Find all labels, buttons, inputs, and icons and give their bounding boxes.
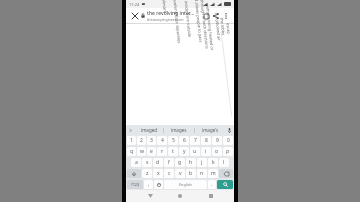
staticText: o [215,148,219,155]
staticText: escaping [225,23,231,34]
button[interactable]: , [144,180,153,189]
staticText: 2 [140,137,143,144]
staticText: q [130,148,134,155]
button[interactable]: Backspace [219,169,233,178]
button[interactable]: t [168,147,178,156]
button[interactable]: a [131,158,141,167]
button[interactable]: Tabs [201,11,211,21]
staticText: the inside from outside [183,0,192,38]
button[interactable]: the revolving inter… [147,10,199,22]
button[interactable]: s [142,158,152,167]
button[interactable]: imaged [134,125,163,135]
button[interactable]: 6 [179,136,189,145]
button[interactable]: 0 [223,136,233,145]
button[interactable]: u [190,147,200,156]
staticText: 0 [227,137,230,144]
staticText: l [223,159,225,166]
button[interactable]: o [212,147,222,156]
button[interactable]: 9 [212,136,222,145]
button[interactable]: . [208,180,216,189]
button[interactable]: z [142,169,152,178]
staticText: . [211,181,213,188]
button[interactable]: w [137,147,146,156]
button[interactable]: Shift [127,169,141,178]
staticText: f [168,159,170,166]
button[interactable]: y [179,147,189,156]
staticText: English [179,182,192,187]
staticText: v [179,170,182,177]
staticText: through in both directions [199,0,210,50]
staticText: conditioned air from inside [214,12,222,45]
staticText: 5 [172,137,175,144]
button[interactable]: f [164,158,174,167]
button[interactable]: images [164,125,194,135]
button[interactable]: ?123 [127,180,143,189]
button[interactable]: 3 [147,136,156,145]
button[interactable]: 8 [201,136,211,145]
button[interactable]: Share [211,11,221,21]
button[interactable]: Recent apps [204,190,218,202]
button[interactable]: q [127,147,136,156]
staticText: a revolving door separates [172,0,182,44]
staticText: images [171,127,187,133]
button[interactable]: Expand suggestions [126,125,134,135]
staticText: k [212,159,215,166]
button[interactable]: English [164,180,207,189]
button[interactable]: h [186,158,196,167]
button[interactable]: More options [221,11,231,21]
button[interactable]: g [175,158,185,167]
staticText: c [168,170,171,177]
button[interactable]: c [164,169,174,178]
button[interactable]: Emoji [154,180,163,189]
staticText: 6 [183,137,186,144]
button[interactable]: r [157,147,167,156]
button[interactable]: j [197,158,207,167]
button[interactable]: e [147,147,156,156]
staticText: s [146,159,149,166]
button[interactable]: image's [195,125,225,135]
button[interactable]: 7 [190,136,200,145]
staticText: a [135,159,138,166]
staticText: w [140,148,144,155]
button[interactable]: k [208,158,218,167]
button[interactable]: 1 [127,136,136,145]
staticText: Bookmark [161,0,168,14]
staticText: image's [202,127,219,133]
button[interactable]: n [197,169,207,178]
button[interactable]: Home [173,190,187,202]
staticText: imaged [141,127,157,133]
staticText: thesavvyengineer.com [147,17,184,22]
staticText: p [226,148,230,155]
button[interactable]: b [186,169,196,178]
button[interactable]: d [153,158,163,167]
button[interactable]: 5 [168,136,178,145]
staticText: j [201,159,203,166]
staticText: h [189,159,193,166]
button[interactable]: i [201,147,211,156]
button[interactable]: p [223,147,233,156]
staticText: 8 [205,137,208,144]
staticText: x [157,170,160,177]
staticText: 1 [130,137,133,144]
button[interactable]: Close [129,10,140,21]
staticText: e [150,148,153,155]
staticText: 11:24 [129,2,140,7]
button[interactable]: l [219,158,229,167]
staticText: 4 [161,137,164,144]
button[interactable]: v [175,169,185,178]
button[interactable]: 4 [157,136,167,145]
button[interactable]: x [153,169,163,178]
staticText: 3 [150,137,153,144]
button[interactable]: m [208,169,218,178]
staticText: 7 [194,137,197,144]
button[interactable]: Back [143,190,157,202]
button[interactable]: Search [217,180,233,189]
staticText: r [161,148,164,155]
staticText: d [156,159,160,166]
staticText: the lobby [219,17,226,36]
button[interactable]: 2 [137,136,146,145]
staticText: ?123 [131,182,140,187]
staticText: z [146,170,149,177]
staticText: y [183,148,186,155]
button[interactable]: Voice input [225,125,234,135]
